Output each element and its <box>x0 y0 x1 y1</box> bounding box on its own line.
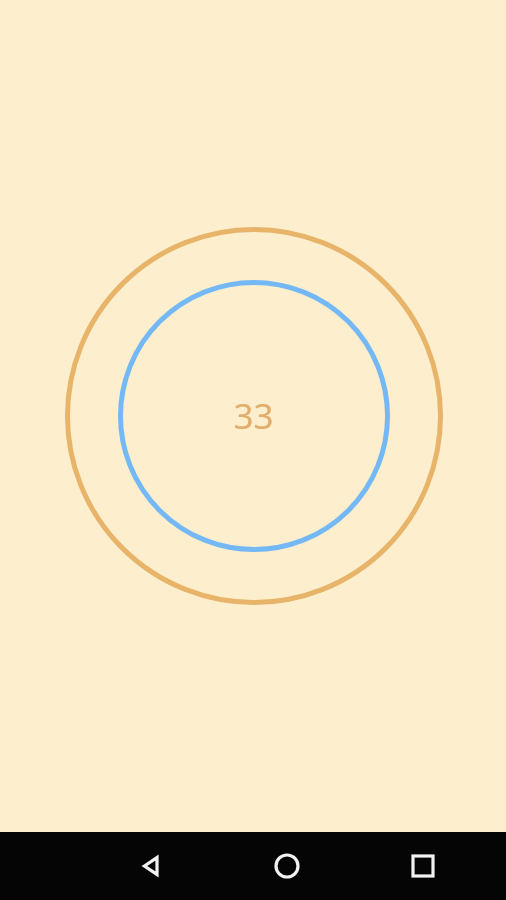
button[interactable]: Home <box>253 832 321 900</box>
button[interactable]: 33 <box>0 0 506 832</box>
button[interactable]: Back <box>117 832 185 900</box>
staticText: 33 <box>233 392 274 440</box>
button[interactable]: Recent apps <box>389 832 457 900</box>
